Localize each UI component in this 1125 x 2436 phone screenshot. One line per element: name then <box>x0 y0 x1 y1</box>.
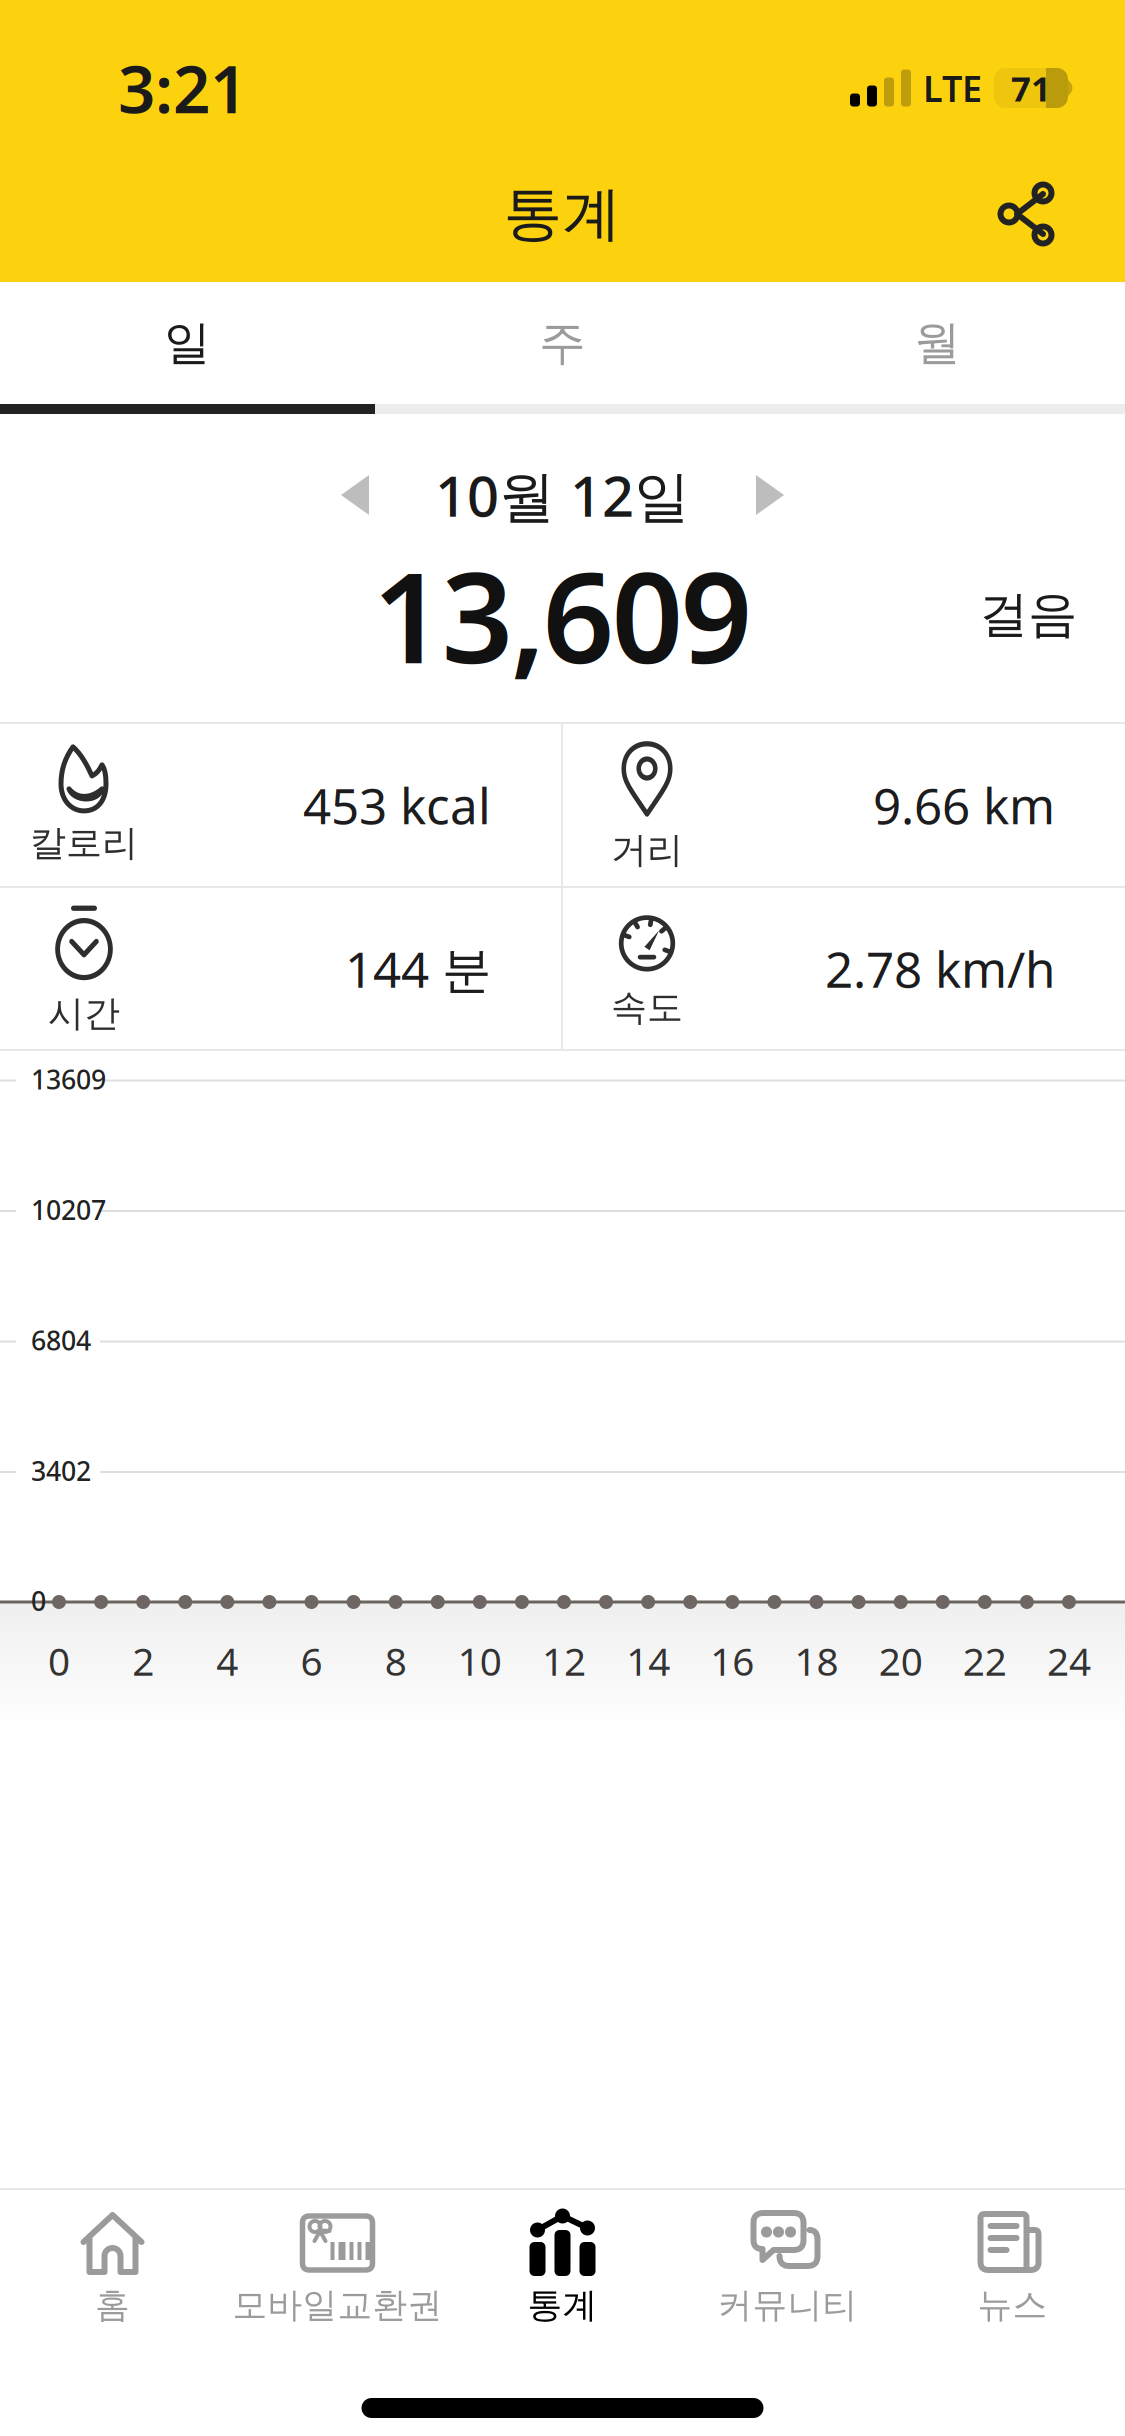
staticText: 12 <box>542 1635 586 1686</box>
staticText: 453 kcal <box>303 772 491 838</box>
staticText: 일 <box>164 314 211 372</box>
staticText: 71 <box>1011 65 1051 111</box>
staticText: 2.78 km/h <box>825 936 1055 1001</box>
staticText: 걸음 <box>979 584 1077 645</box>
staticText: 13,609 <box>372 531 752 698</box>
button[interactable] <box>341 475 369 515</box>
staticText: 8 <box>385 1635 407 1686</box>
staticText: 0 <box>48 1635 70 1686</box>
staticText: 거리 <box>611 828 683 872</box>
staticText: 3402 <box>31 1453 91 1488</box>
staticText: LTE <box>923 64 982 112</box>
button[interactable] <box>997 181 1125 247</box>
staticText: 9.66 km <box>873 772 1055 838</box>
staticText: 13609 <box>31 1061 106 1097</box>
staticText: 10207 <box>31 1192 106 1227</box>
staticText: 시간 <box>48 991 120 1036</box>
staticText: 통계 <box>503 178 621 250</box>
button[interactable] <box>756 475 784 515</box>
staticText: 속도 <box>611 985 683 1030</box>
staticText: 6 <box>300 1635 322 1686</box>
staticText: 18 <box>794 1635 838 1686</box>
staticText: 3:21 <box>118 45 247 131</box>
staticText: 0 <box>31 1583 46 1618</box>
staticText: 10 <box>458 1635 502 1686</box>
staticText: 홈 <box>95 2284 130 2327</box>
staticText: 커뮤니티 <box>717 2284 857 2327</box>
button[interactable]: 통계 <box>450 2208 675 2327</box>
staticText: 10월 12일 <box>435 458 690 532</box>
staticText: 24 <box>1047 1635 1091 1686</box>
staticText: 통계 <box>527 2284 597 2327</box>
staticText: 20 <box>879 1635 923 1686</box>
button[interactable]: 월 <box>750 314 1125 372</box>
staticText: 16 <box>710 1635 754 1686</box>
staticText: 월 <box>914 314 961 372</box>
staticText: 4 <box>216 1635 238 1686</box>
button[interactable]: 홈 <box>0 2208 225 2327</box>
staticText: 주 <box>539 314 586 372</box>
staticText: 뉴스 <box>977 2284 1047 2327</box>
button[interactable]: 커뮤니티 <box>675 2208 900 2327</box>
staticText: 6804 <box>31 1322 91 1358</box>
staticText: 144 분 <box>345 936 491 1001</box>
staticText: 모바일교환권 <box>232 2284 442 2327</box>
button[interactable]: 주 <box>375 314 750 372</box>
button[interactable]: 모바일교환권 <box>225 2208 450 2327</box>
staticText: 14 <box>626 1635 670 1686</box>
staticText: 2 <box>132 1635 154 1686</box>
staticText: 칼로리 <box>30 821 138 865</box>
button[interactable]: 일 <box>0 314 375 372</box>
staticText: 22 <box>963 1635 1007 1686</box>
button[interactable]: 뉴스 <box>900 2208 1125 2327</box>
